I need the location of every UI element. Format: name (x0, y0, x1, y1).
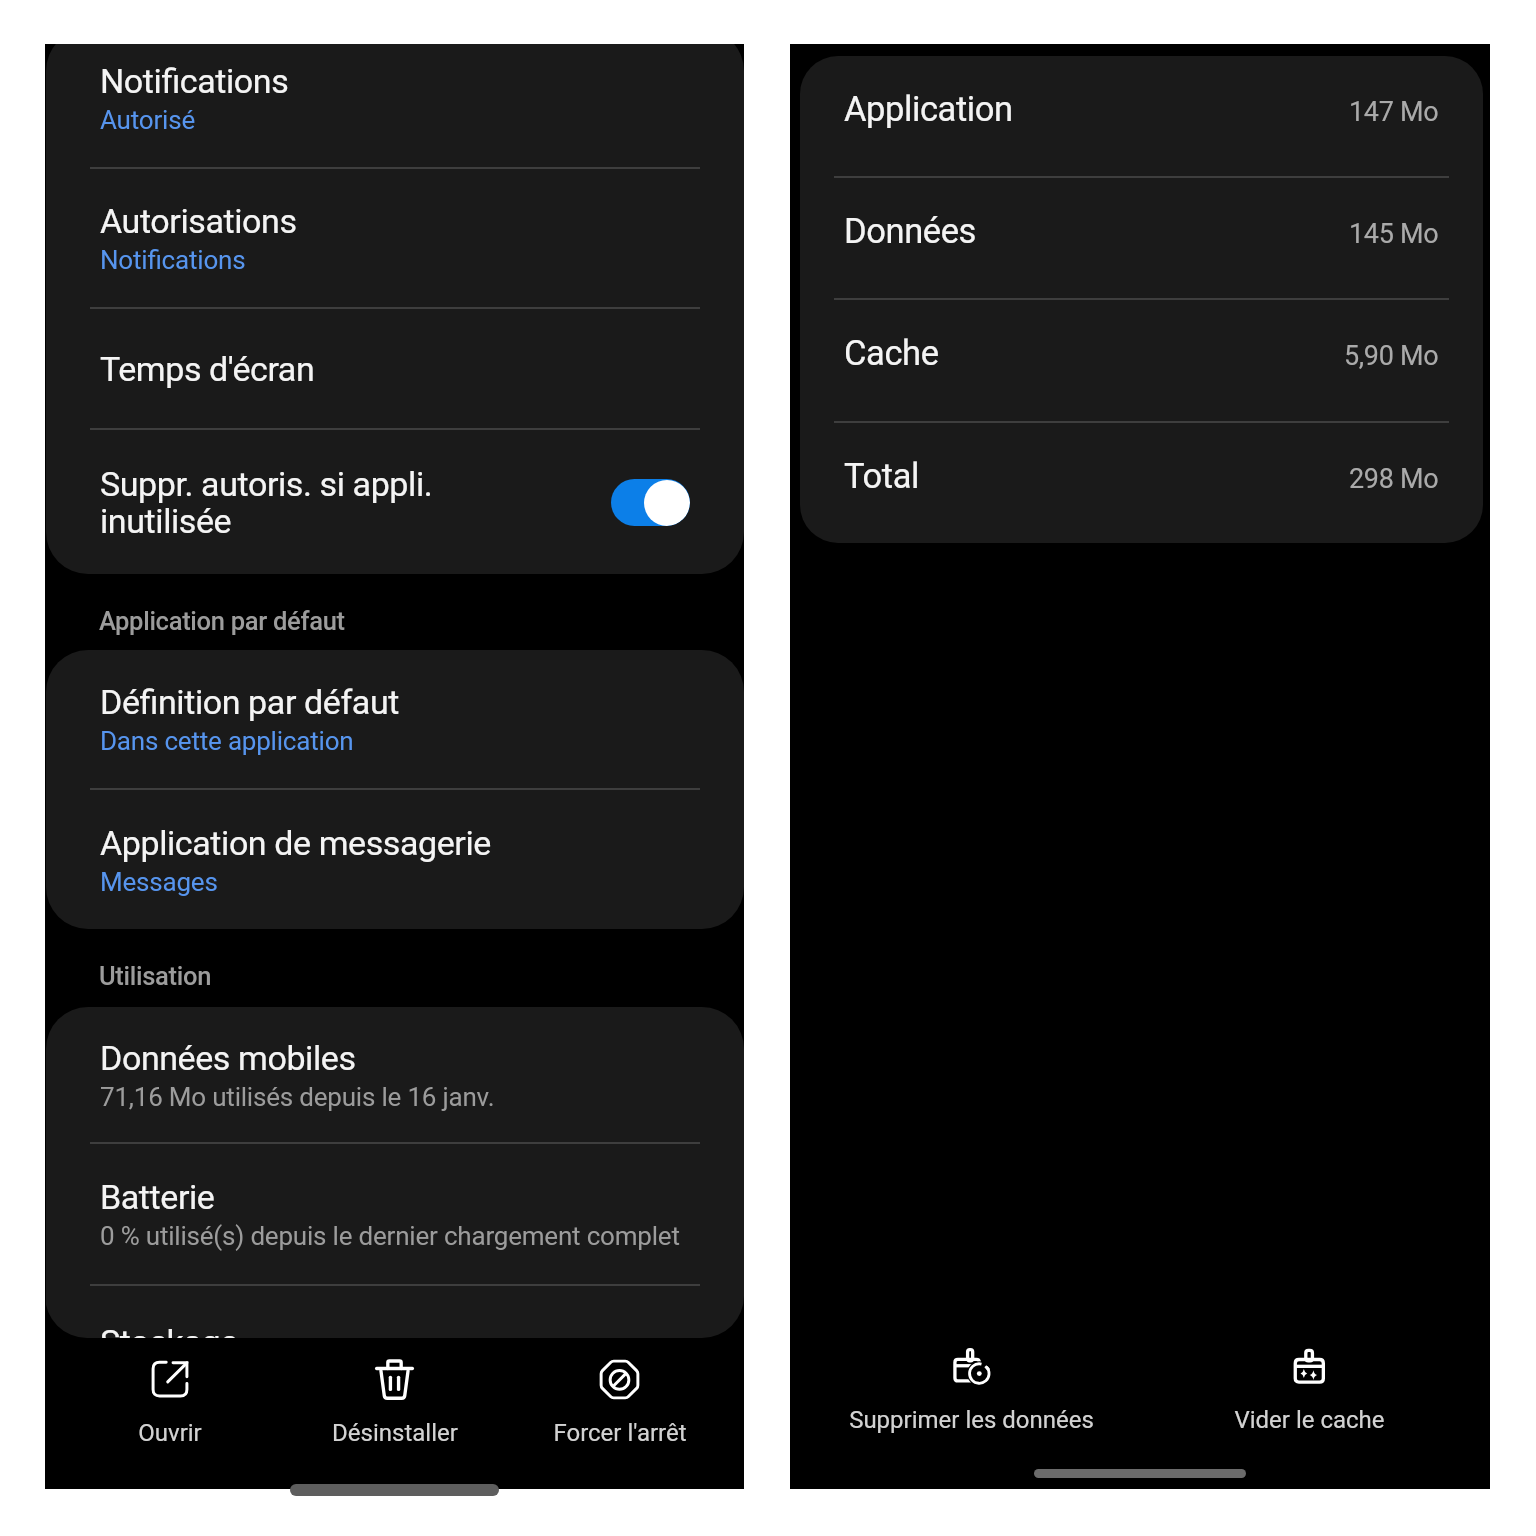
staticText: 5,90 Mo (1344, 340, 1439, 372)
staticText: 147 Mo (1349, 96, 1439, 128)
button[interactable]: Forcer l'arrêt (507, 1338, 732, 1489)
button[interactable]: Batterie (46, 1144, 744, 1284)
staticText: Données mobiles (100, 1038, 356, 1078)
button[interactable]: Supprimer les données (802, 1337, 1140, 1489)
staticText: 298 Mo (1349, 463, 1439, 495)
staticText: Utilisation (99, 961, 212, 991)
staticText: Forcer l'arrêt (553, 1419, 687, 1447)
staticText: Supprimer les données (849, 1406, 1094, 1434)
staticText: Autorisations (100, 201, 297, 241)
staticText: Autorisé (100, 105, 195, 135)
staticText: Notifications (100, 61, 289, 101)
staticText: Ouvrir (138, 1419, 202, 1447)
staticText: Définition par défaut (100, 682, 399, 722)
staticText: Suppr. autoris. si appli. inutilisée (100, 464, 433, 541)
button[interactable]: Autorisations (46, 169, 744, 307)
button[interactable]: Application (800, 56, 1483, 176)
staticText: 145 Mo (1349, 218, 1439, 250)
button[interactable]: Application de messagerie (46, 790, 744, 929)
staticText: Stockage (100, 1322, 238, 1338)
button[interactable]: Cache (800, 300, 1483, 421)
button[interactable]: Ouvrir (57, 1338, 282, 1489)
staticText: 0 % utilisé(s) depuis le dernier chargem… (100, 1221, 680, 1251)
staticText: Application (844, 89, 1013, 129)
button[interactable]: Suppr. autoris. si appli. inutilisée (46, 430, 744, 574)
staticText: Données (844, 211, 976, 251)
button[interactable]: Vider le cache (1140, 1337, 1478, 1489)
staticText: Application par défaut (99, 606, 345, 636)
staticText: Cache (844, 333, 939, 373)
staticText: Notifications (100, 245, 246, 275)
staticText: Désinstaller (332, 1419, 458, 1447)
staticText: Batterie (100, 1177, 215, 1217)
button[interactable]: Données mobiles (46, 1007, 744, 1142)
button[interactable]: Données (800, 178, 1483, 298)
staticText: Vider le cache (1234, 1406, 1385, 1434)
button[interactable]: Désinstaller (282, 1338, 507, 1489)
button[interactable]: Total (800, 423, 1483, 543)
button[interactable]: Temps d'écran (46, 309, 744, 428)
staticText: 71,16 Mo utilisés depuis le 16 janv. (100, 1082, 495, 1112)
button[interactable]: Stockage (46, 1286, 744, 1338)
button[interactable]: Définition par défaut (46, 650, 744, 788)
staticText: Total (844, 456, 919, 496)
staticText: Dans cette application (100, 726, 354, 756)
staticText: Temps d'écran (100, 349, 315, 389)
button[interactable]: Notifications (46, 44, 744, 167)
staticText: Application de messagerie (100, 823, 491, 863)
staticText: Messages (100, 867, 218, 897)
